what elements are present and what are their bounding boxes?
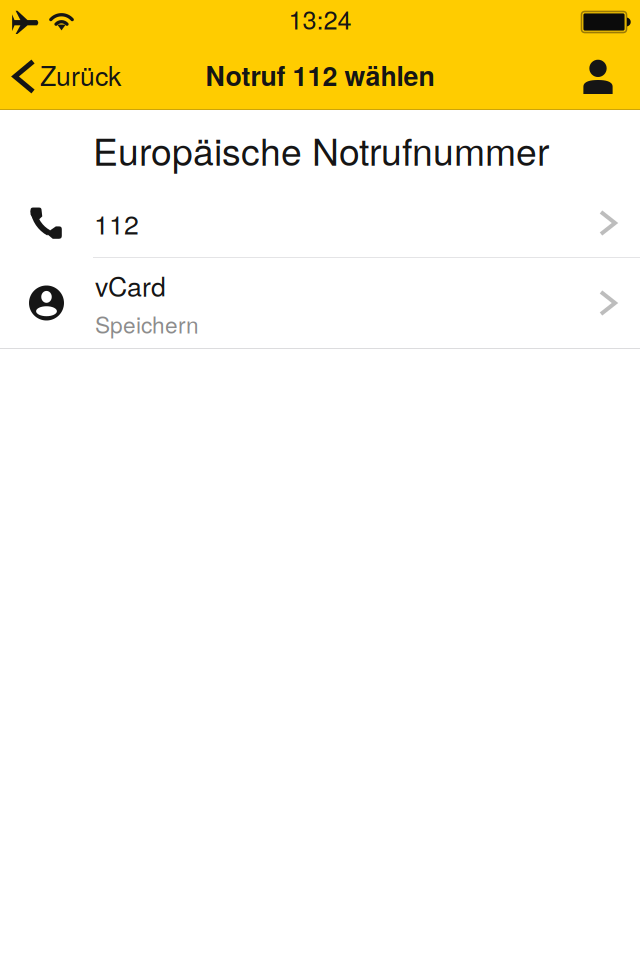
button[interactable]: Zurück: [0, 44, 135, 108]
button[interactable]: 112: [0, 189, 640, 258]
staticText: vCard: [95, 266, 166, 304]
button[interactable]: Profil: [557, 44, 640, 108]
staticText: 13:24: [288, 0, 351, 37]
staticText: Zurück: [40, 55, 121, 94]
staticText: Europäische Notrufnummer: [93, 123, 549, 176]
staticText: 112: [94, 204, 139, 242]
button[interactable]: vCard: [0, 258, 640, 349]
staticText: Notruf 112 wählen: [205, 56, 434, 94]
staticText: Speichern: [95, 307, 199, 340]
